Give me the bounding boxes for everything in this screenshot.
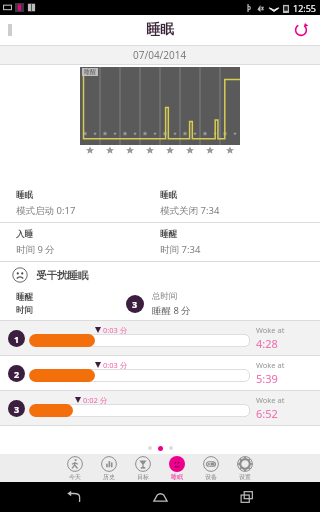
button[interactable]: 睡眠 (160, 454, 194, 482)
staticText: 0:03 分 (103, 325, 128, 335)
staticText: 历史 (103, 473, 115, 481)
staticText: 6:52 (256, 406, 278, 421)
button[interactable]: 1 (0, 321, 320, 355)
staticText: 2 (14, 368, 20, 380)
staticText: 模式启动 0:17 (16, 204, 76, 217)
staticText: 3 (132, 298, 138, 310)
staticText: 4:28 (256, 336, 278, 351)
button[interactable]: Back (61, 484, 87, 510)
staticText: 1 (14, 333, 20, 345)
staticText: 睡醒 8 分 (152, 304, 191, 317)
button[interactable]: Refresh (290, 19, 312, 41)
button[interactable]: 今天 (58, 454, 92, 482)
staticText: 睡醒 (84, 68, 96, 76)
staticText: 5:39 (256, 371, 278, 386)
staticText: 入睡 (16, 229, 33, 240)
staticText: 设备 (205, 473, 217, 481)
staticText: 0:02 分 (83, 395, 108, 405)
staticText: 睡眠 (160, 190, 177, 201)
button[interactable]: 设置 (228, 454, 262, 482)
staticText: 时间 7:34 (160, 243, 201, 256)
button[interactable]: 设备 (194, 454, 228, 482)
staticText: Woke at (256, 325, 285, 335)
button[interactable]: 2 (0, 356, 320, 390)
button[interactable]: 目标 (126, 454, 160, 482)
staticText: 睡眠 (16, 190, 33, 201)
button[interactable]: Recent apps (234, 484, 260, 510)
staticText: 设置 (239, 473, 251, 481)
button[interactable]: 07/04/2014 (0, 46, 320, 64)
staticText: 目标 (137, 473, 149, 481)
staticText: 时间 9 分 (16, 243, 55, 256)
staticText: 0:03 分 (103, 360, 128, 370)
staticText: 睡醒 (16, 292, 33, 303)
button[interactable]: 历史 (92, 454, 126, 482)
staticText: 睡醒 (160, 229, 177, 240)
staticText: 07/04/2014 (133, 48, 187, 62)
button[interactable]: 入睡 (0, 223, 320, 261)
staticText: 总时间 (152, 291, 178, 302)
staticText: 睡眠 (146, 21, 174, 39)
button[interactable]: 睡眠 (0, 184, 320, 222)
staticText: Woke at (256, 395, 285, 405)
button[interactable]: Home (147, 484, 173, 510)
staticText: 3 (14, 403, 20, 415)
staticText: Woke at (256, 360, 285, 370)
staticText: 12:55 (293, 2, 317, 14)
staticText: 今天 (69, 473, 81, 481)
staticText: 时间 (16, 305, 33, 316)
staticText: 模式关闭 7:34 (160, 204, 220, 217)
staticText: 睡眠 (171, 473, 183, 481)
button[interactable]: 3 (0, 391, 320, 425)
staticText: 受干扰睡眠 (36, 269, 89, 282)
